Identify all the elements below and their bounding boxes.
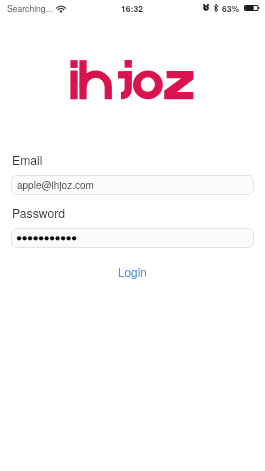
button[interactable]: Login [110,261,155,282]
staticText: Email [12,151,43,168]
staticText: 16:32 [121,2,143,14]
staticText: Login [118,263,147,280]
button[interactable]: apple@ihjoz.com [11,175,254,195]
staticText: apple@ihjoz.com [17,178,94,192]
staticText: 63% [222,2,240,14]
button[interactable] [11,228,254,248]
staticText: Password [12,204,66,221]
staticText: Searching... [7,2,53,14]
